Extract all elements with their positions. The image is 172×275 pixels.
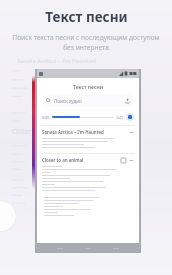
staticText: Текст песни bbox=[73, 83, 104, 90]
staticText: Closer to an animal bbox=[12, 127, 73, 136]
button[interactable]: Play bbox=[126, 113, 134, 121]
staticText: Текст песни bbox=[45, 8, 128, 26]
staticText: Closer to an animal bbox=[42, 157, 84, 163]
staticText: Поиск текста песни с последующим доступо… bbox=[6, 33, 166, 52]
other: More options bbox=[129, 158, 134, 163]
staticText: Sonata Arctica – I'm Haunted bbox=[17, 57, 96, 65]
other: More options bbox=[129, 130, 134, 135]
staticText: 3:41 bbox=[116, 115, 124, 120]
staticText: Sonata Arctica – I'm Haunted bbox=[42, 129, 104, 135]
button[interactable]: Closer to an animal bbox=[37, 157, 139, 193]
button[interactable]: Поиск аудио bbox=[42, 94, 134, 107]
other: Download bbox=[121, 158, 126, 163]
other: Voice search bbox=[125, 98, 130, 103]
staticText: Поиск аудио bbox=[54, 98, 82, 104]
staticText: 0:00 bbox=[42, 115, 50, 120]
button[interactable]: Sonata Arctica – I'm Haunted bbox=[37, 129, 139, 150]
button[interactable] bbox=[52, 116, 80, 118]
